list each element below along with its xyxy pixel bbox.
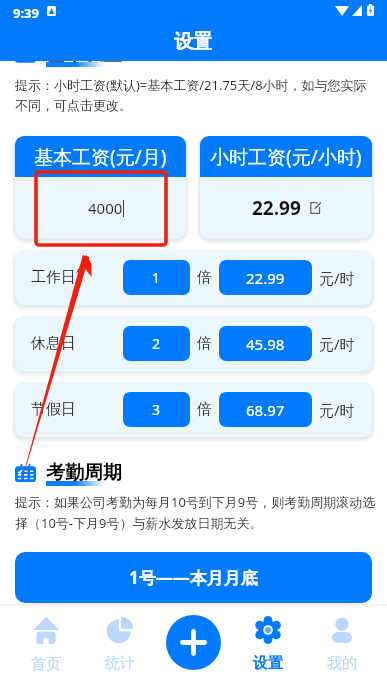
staticText: 3 [152,400,161,419]
staticText: 45.98 [246,334,285,354]
staticText: 22.99 [252,195,301,221]
staticText: 9:39 [13,4,39,22]
button[interactable]: 68.97 [219,392,312,427]
staticText: 倍 [197,400,212,419]
button[interactable]: 设置 [231,604,305,673]
button[interactable]: 基本工资(元/月) [15,136,186,238]
staticText: 设置 [253,654,283,673]
button[interactable]: 我的 [305,604,379,673]
staticText: 休息日 [31,334,76,353]
staticText: 我的 [327,654,357,673]
button[interactable]: 22.99 [219,260,312,295]
button[interactable]: 45.98 [219,326,312,361]
button[interactable]: 1号——本月月底 [15,552,372,603]
staticText: 基本工资(元/月) [34,144,167,170]
button[interactable]: 首页 [8,604,83,674]
staticText: 2 [152,334,161,353]
button[interactable]: 休息日 [15,316,372,371]
staticText: 元/时 [319,334,355,354]
button[interactable]: 1 [123,260,190,295]
staticText: 基本设置 [46,42,122,66]
staticText: 倍 [197,334,212,353]
button[interactable]: Add [166,615,221,670]
staticText: 考勤周期 [46,461,122,485]
staticText: 倍 [197,268,212,287]
staticText: 工作日 [31,268,76,287]
staticText: 节假日 [31,400,76,419]
staticText: 小时工资(元/小时) [210,144,362,170]
staticText: 提示：小时工资(默认)=基本工资/21.75天/8小时，如与您实际 不同，可点击… [15,76,367,114]
button[interactable]: 节假日 [15,382,372,437]
staticText: 4000 [88,198,123,218]
staticText: 68.97 [246,400,285,420]
button[interactable]: 3 [123,392,190,427]
button[interactable]: 统计 [83,604,157,673]
staticText: 22.99 [246,268,285,288]
button[interactable]: 工作日 [15,250,372,305]
staticText: 1 [152,268,161,287]
button[interactable]: 小时工资(元/小时) [200,136,372,238]
staticText: 首页 [31,655,61,674]
button[interactable]: 2 [123,326,190,361]
staticText: 1号——本月月底 [129,566,258,589]
staticText: 提示：如果公司考勤为每月10号到下月9号，则考勤周期滚动选 择（10号-下月9号… [15,493,376,532]
staticText: 统计 [105,654,135,673]
staticText: 元/时 [319,268,355,288]
staticText: 设置 [174,30,212,54]
staticText: 元/时 [319,400,355,420]
